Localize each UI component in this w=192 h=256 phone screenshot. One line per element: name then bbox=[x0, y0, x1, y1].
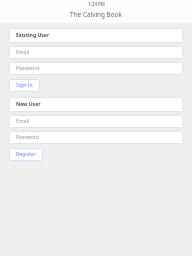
staticText: Password bbox=[16, 134, 40, 141]
staticText: 1:24 PM bbox=[88, 1, 105, 7]
button[interactable]: Register bbox=[9, 148, 43, 161]
staticText: Sign In bbox=[16, 82, 33, 89]
button[interactable]: New User bbox=[9, 97, 183, 112]
button[interactable]: Email bbox=[9, 115, 183, 128]
staticText: Existing User bbox=[16, 32, 50, 39]
button[interactable]: Password bbox=[9, 62, 183, 75]
button[interactable]: Existing User bbox=[9, 28, 183, 43]
staticText: Email bbox=[16, 49, 30, 56]
staticText: The Calving Book bbox=[70, 10, 122, 19]
button[interactable]: Sign In bbox=[9, 79, 40, 92]
button[interactable]: Password bbox=[9, 131, 183, 144]
staticText: Password bbox=[16, 65, 40, 72]
staticText: Email bbox=[16, 118, 30, 125]
staticText: Register bbox=[16, 151, 36, 158]
staticText: New User bbox=[16, 101, 41, 108]
button[interactable]: Email bbox=[9, 46, 183, 59]
